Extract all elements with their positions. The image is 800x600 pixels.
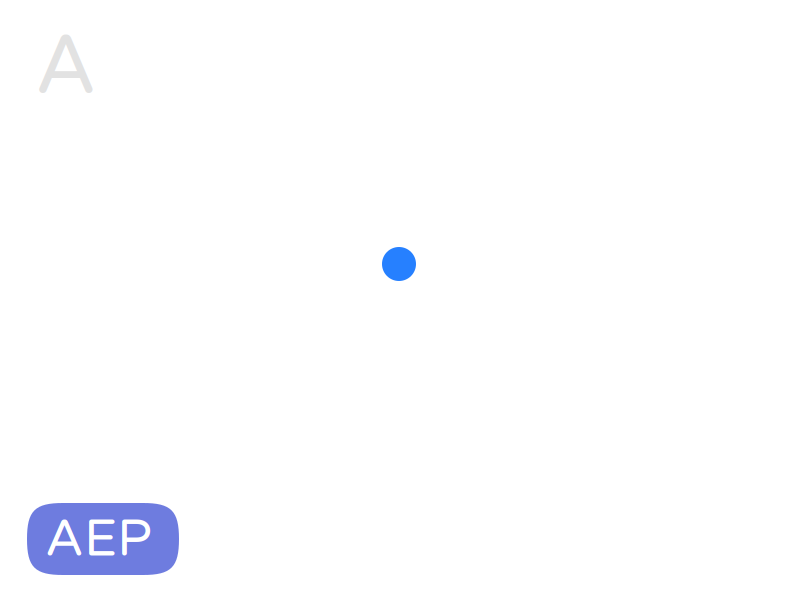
staticText: AEP	[45, 508, 152, 570]
staticText: A	[35, 17, 97, 116]
button[interactable]: AEP	[27, 503, 179, 575]
